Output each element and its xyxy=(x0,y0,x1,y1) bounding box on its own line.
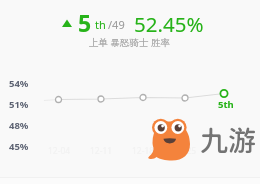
staticText: 5th xyxy=(218,98,234,111)
staticText: 52.45% xyxy=(134,10,204,38)
staticText: 5 xyxy=(78,7,92,38)
staticText: 54% xyxy=(9,77,29,90)
staticText: 51% xyxy=(9,98,29,111)
staticText: 45% xyxy=(9,140,29,153)
staticText: th xyxy=(95,17,106,32)
staticText: 12-25 xyxy=(174,145,197,157)
staticText: /49 xyxy=(108,17,125,32)
staticText: 48% xyxy=(9,119,29,132)
button[interactable]: 5 xyxy=(62,7,204,38)
button[interactable]: 上单 暴怒骑士 胜率 xyxy=(89,36,170,49)
staticText: 12-18 xyxy=(132,145,155,157)
staticText: 九游 xyxy=(200,124,257,157)
